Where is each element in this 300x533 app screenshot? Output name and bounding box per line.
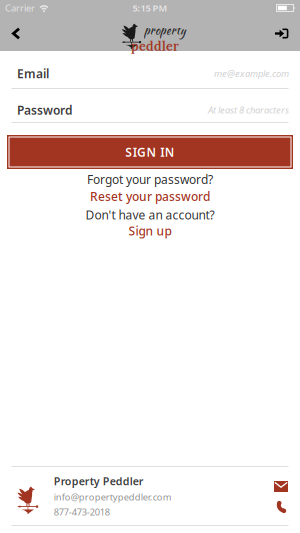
staticText: info@propertypeddler.com [54, 491, 172, 503]
button[interactable]: Email Property Peddler [274, 481, 288, 492]
staticText: 5:15 PM [132, 2, 167, 14]
button[interactable]: Back [0, 16, 36, 50]
staticText: Sign up [128, 223, 171, 239]
staticText: Email [17, 65, 49, 81]
staticText: Forgot your password? [87, 171, 213, 187]
staticText: 877-473-2018 [54, 506, 110, 518]
staticText: Don't have an account? [85, 207, 214, 223]
button[interactable]: Call Property Peddler [274, 500, 288, 514]
staticText: Password [17, 102, 73, 118]
staticText: property [144, 22, 186, 39]
staticText: me@example.com [214, 67, 289, 80]
button[interactable]: Reset your password [90, 187, 210, 204]
button[interactable]: Password [0, 89, 300, 122]
staticText: peddler [131, 38, 179, 54]
button[interactable]: SIGN IN [7, 135, 293, 169]
staticText: SIGN IN [125, 144, 175, 160]
staticText: Carrier [5, 2, 35, 14]
button[interactable]: Sign up [128, 223, 171, 239]
staticText: Reset your password [90, 188, 210, 204]
button[interactable]: Email [0, 51, 300, 88]
staticText: Property Peddler [54, 474, 144, 488]
button[interactable]: Sign In [265, 16, 300, 50]
staticText: At least 8 characters [208, 104, 289, 116]
